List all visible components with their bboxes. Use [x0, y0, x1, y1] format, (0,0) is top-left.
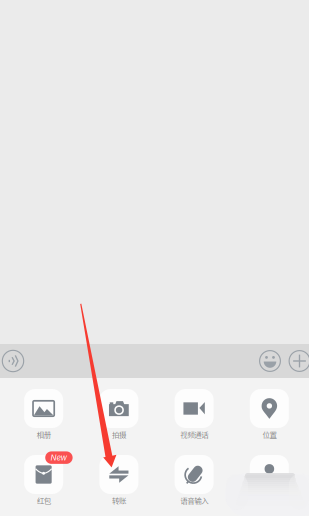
- button[interactable]: Emoji: [257, 344, 283, 378]
- button[interactable]: Voice message: [0, 344, 26, 378]
- staticText: 转账: [112, 495, 126, 506]
- button[interactable]: 拍摄: [81, 389, 156, 441]
- button[interactable]: 相册: [6, 389, 81, 441]
- button[interactable]: New: [6, 455, 81, 507]
- staticText: 视频通话: [180, 429, 208, 440]
- staticText: 红包: [37, 495, 51, 506]
- button[interactable]: 个人名片: [232, 455, 307, 507]
- button[interactable]: 语音输入: [156, 455, 232, 507]
- staticText: 语音输入: [180, 495, 208, 506]
- staticText: 相册: [37, 429, 51, 440]
- button[interactable]: 位置: [232, 389, 307, 441]
- button[interactable]: 转账: [81, 455, 156, 507]
- button[interactable]: More functions: [286, 344, 309, 378]
- staticText: New: [50, 453, 67, 462]
- button[interactable]: 视频通话: [156, 389, 232, 441]
- staticText: 拍摄: [112, 429, 126, 440]
- staticText: 位置: [262, 429, 276, 440]
